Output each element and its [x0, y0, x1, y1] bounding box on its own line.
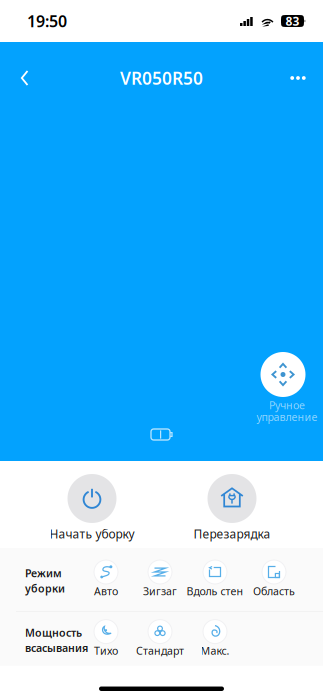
button[interactable]: Вдоль стен [186, 560, 243, 598]
staticText: управление [256, 410, 317, 424]
staticText: Макс. [200, 644, 229, 658]
staticText: Стандарт [136, 644, 184, 658]
button[interactable]: Перезарядка [162, 474, 302, 542]
staticText: VR050R50 [120, 66, 203, 89]
staticText: Зигзаг [143, 584, 177, 598]
button[interactable]: Макс. [200, 620, 229, 658]
staticText: 83 [285, 13, 299, 29]
button[interactable]: Начать уборку [22, 474, 162, 542]
button[interactable]: Область [253, 560, 295, 598]
staticText: Область [253, 584, 295, 598]
staticText: всасывания [25, 641, 88, 655]
button[interactable]: Назад [4, 59, 46, 97]
button[interactable]: Тихо [94, 620, 118, 658]
button[interactable]: Ещё [279, 59, 317, 97]
staticText: Режим [25, 566, 62, 580]
staticText: уборки [25, 581, 65, 595]
staticText: Тихо [94, 644, 118, 658]
staticText: Начать уборку [49, 526, 134, 542]
staticText: Мощность [25, 626, 82, 640]
staticText: Перезарядка [193, 526, 270, 542]
button[interactable]: Авто [94, 560, 118, 598]
button[interactable]: Зигзаг [143, 560, 177, 598]
staticText: Вдоль стен [186, 584, 243, 598]
staticText: Авто [94, 584, 118, 598]
button[interactable]: Ручное [247, 352, 323, 424]
staticText: 19:50 [27, 10, 67, 32]
staticText: Ручное [269, 398, 305, 412]
button[interactable]: Стандарт [136, 620, 184, 658]
